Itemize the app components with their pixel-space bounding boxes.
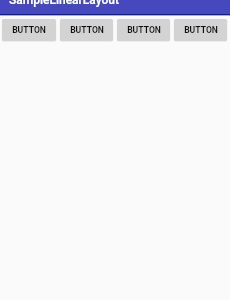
button[interactable]: BUTTON: [60, 19, 113, 41]
staticText: BUTTON: [12, 25, 46, 35]
staticText: BUTTON: [70, 25, 104, 35]
button[interactable]: BUTTON: [117, 19, 170, 41]
staticText: BUTTON: [127, 25, 161, 35]
staticText: SampleLinearLayout: [9, 0, 119, 7]
button[interactable]: BUTTON: [174, 19, 227, 41]
button[interactable]: BUTTON: [2, 19, 56, 41]
staticText: BUTTON: [184, 25, 218, 35]
